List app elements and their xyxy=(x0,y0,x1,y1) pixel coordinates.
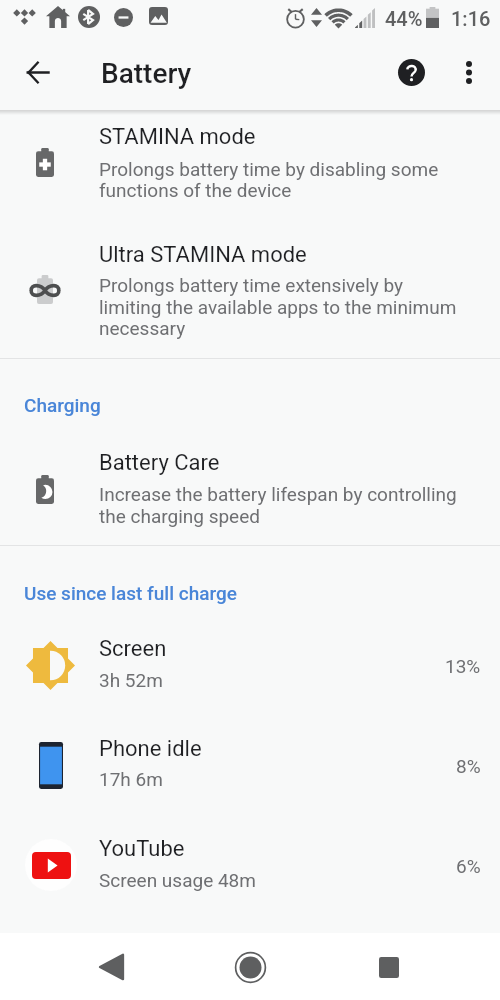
staticText: 1:16 xyxy=(451,7,491,30)
staticText: 8% xyxy=(456,755,481,777)
staticText: Battery xyxy=(101,57,192,90)
staticText: the charging speed xyxy=(99,505,260,527)
button[interactable]: Battery Care xyxy=(0,436,500,544)
staticText: 6% xyxy=(456,855,481,877)
button[interactable]: Screen xyxy=(0,616,500,716)
staticText: STAMINA mode xyxy=(99,124,256,150)
button[interactable]: Help xyxy=(389,50,433,94)
button[interactable]: Phone idle xyxy=(0,716,500,816)
staticText: Battery Care xyxy=(99,450,220,476)
staticText: 3h 52m xyxy=(99,669,163,691)
button[interactable]: Recent apps xyxy=(363,941,415,993)
button[interactable]: Ultra STAMINA mode xyxy=(0,228,500,356)
staticText: necessary xyxy=(99,317,186,339)
staticText: 44% xyxy=(385,7,423,30)
button[interactable]: Back xyxy=(16,50,60,94)
button[interactable]: Back xyxy=(85,941,137,993)
button[interactable]: YouTube xyxy=(0,816,500,916)
staticText: Screen usage 48m xyxy=(99,869,256,891)
staticText: Charging xyxy=(24,394,101,416)
staticText: Prolongs battery time by disabling some xyxy=(99,158,439,180)
button[interactable]: More options xyxy=(447,50,491,94)
staticText: Ultra STAMINA mode xyxy=(99,242,307,268)
staticText: limiting the available apps to the minim… xyxy=(99,296,457,318)
staticText: functions of the device xyxy=(99,179,292,201)
staticText: Increase the battery lifespan by control… xyxy=(99,483,457,505)
button[interactable]: Home xyxy=(224,941,276,993)
button[interactable]: STAMINA mode xyxy=(0,110,500,220)
staticText: 13% xyxy=(445,655,481,677)
staticText: YouTube xyxy=(99,836,185,862)
staticText: Use since last full charge xyxy=(24,582,237,604)
staticText: Prolongs battery time extensively by xyxy=(99,274,404,296)
staticText: Screen xyxy=(99,636,167,662)
staticText: Phone idle xyxy=(99,736,202,762)
staticText: 17h 6m xyxy=(99,768,163,790)
